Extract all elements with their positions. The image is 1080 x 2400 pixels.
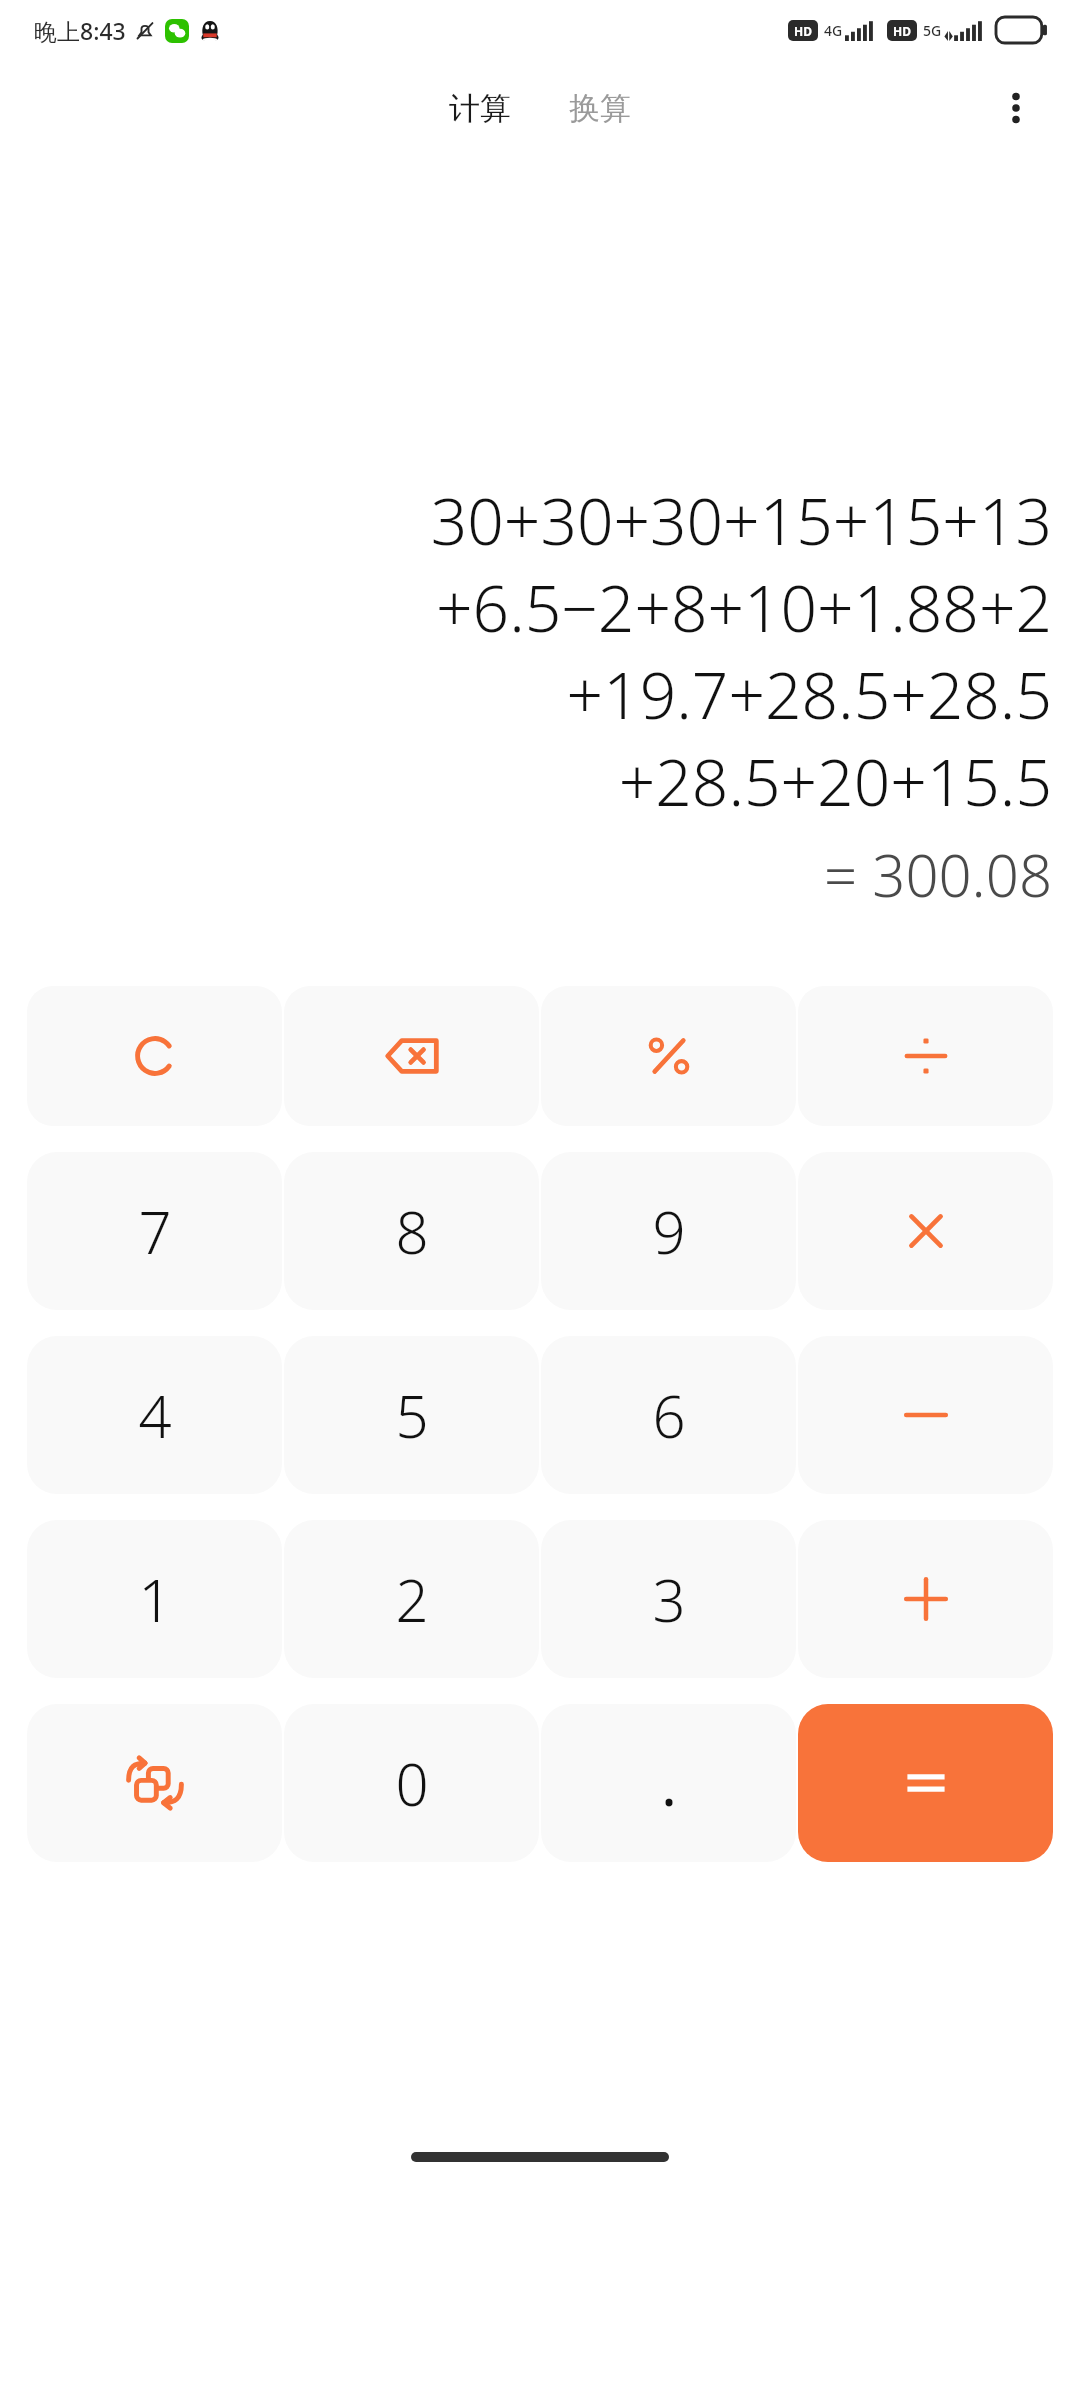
button[interactable]: 1 (27, 1520, 282, 1678)
staticText: +6.5−2+8+10+1.88+2 (436, 564, 1052, 651)
button[interactable]: 6 (541, 1336, 796, 1494)
button[interactable]: Add (798, 1520, 1053, 1678)
button[interactable]: Backspace (284, 986, 539, 1126)
button[interactable]: 计算 (439, 83, 521, 134)
staticText: 6 (652, 1376, 686, 1455)
staticText: 30+30+30+15+15+13 (430, 477, 1052, 564)
staticText: 5 (395, 1376, 429, 1455)
button[interactable]: 0 (284, 1704, 539, 1862)
staticText: 0 (395, 1744, 429, 1823)
staticText: 1 (138, 1560, 172, 1639)
button[interactable]: Clear (27, 986, 282, 1126)
button[interactable]: 换算 (559, 83, 641, 134)
staticText: . (661, 1744, 677, 1823)
button[interactable]: 3 (541, 1520, 796, 1678)
button[interactable]: Subtract (798, 1336, 1053, 1494)
staticText: 9 (652, 1192, 686, 1271)
staticText: 7 (138, 1192, 172, 1271)
button[interactable]: . (541, 1704, 796, 1862)
staticText: 5G (923, 21, 942, 40)
button[interactable]: 8 (284, 1152, 539, 1310)
button[interactable]: 5 (284, 1336, 539, 1494)
button[interactable]: Divide (798, 986, 1053, 1126)
staticText: 2 (395, 1560, 429, 1639)
staticText: +28.5+20+15.5 (618, 738, 1052, 825)
button[interactable]: 4 (27, 1336, 282, 1494)
staticText: 8 (395, 1192, 429, 1271)
button[interactable]: Unit conversion (27, 1704, 282, 1862)
button[interactable]: 2 (284, 1520, 539, 1678)
staticText: 计算 (449, 89, 511, 128)
staticText: = 300.08 (824, 835, 1052, 914)
staticText: 换算 (569, 89, 631, 128)
staticText: HD (893, 23, 911, 39)
button[interactable]: 30+30+30+15+15+13 (0, 156, 1080, 986)
button[interactable]: Percent (541, 986, 796, 1126)
button[interactable]: 9 (541, 1152, 796, 1310)
staticText: HD (794, 23, 812, 39)
button[interactable]: More options (978, 70, 1054, 146)
button[interactable]: Multiply (798, 1152, 1053, 1310)
staticText: 4 (138, 1376, 172, 1455)
staticText: 晚上8:43 (34, 15, 126, 46)
staticText: +19.7+28.5+28.5 (566, 651, 1052, 738)
staticText: 3 (652, 1560, 686, 1639)
staticText: 4G (824, 21, 843, 40)
button[interactable]: 7 (27, 1152, 282, 1310)
button[interactable]: Equals (798, 1704, 1053, 1862)
